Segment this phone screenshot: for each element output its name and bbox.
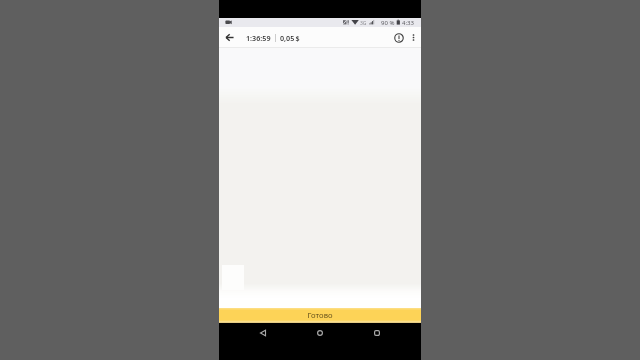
staticText: 0,05 $: [280, 33, 300, 43]
staticText: Готово: [307, 310, 333, 320]
button[interactable]: Готово: [219, 308, 421, 323]
button[interactable]: Back: [221, 27, 238, 48]
staticText: 90 %: [381, 19, 395, 27]
button[interactable]: Back: [253, 323, 273, 343]
staticText: 4:33: [402, 19, 414, 27]
staticText: 1:36:59: [246, 33, 271, 43]
button[interactable]: More options: [407, 27, 420, 48]
button[interactable]: Info: [390, 27, 407, 48]
button[interactable]: Recents: [367, 323, 387, 343]
staticText: 3G: [360, 20, 367, 27]
button[interactable]: Home: [310, 323, 330, 343]
